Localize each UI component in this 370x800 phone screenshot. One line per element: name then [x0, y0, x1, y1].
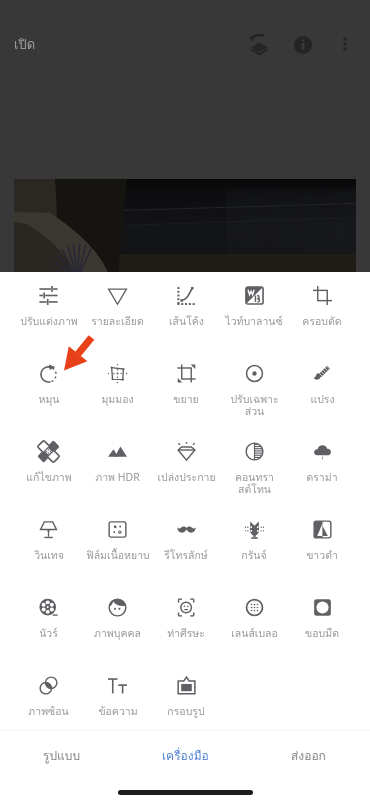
staticText: ภาพซ้อน [28, 703, 69, 720]
button[interactable]: ปรับแต่งภาพ [14, 282, 83, 360]
staticText: ท่าศีรษะ [167, 625, 205, 642]
button[interactable]: เลนส์เบลอ [220, 594, 288, 672]
staticText: เส้นโค้ง [169, 313, 204, 330]
button[interactable]: ขอบมืด [288, 594, 356, 672]
button[interactable]: ภาพ HDR [83, 438, 152, 516]
button[interactable]: กรันจ์ [220, 516, 288, 594]
staticText: ข้อความ [98, 703, 138, 720]
staticText: ครอบตัด [302, 313, 342, 330]
button[interactable]: ครอบตัด [288, 282, 356, 360]
staticText: มุมมอง [101, 391, 134, 408]
staticText: หมุน [38, 391, 60, 408]
staticText: ฟิล์มเนื้อหยาบ [86, 547, 150, 564]
button[interactable]: แก้ไขภาพ [14, 438, 83, 516]
button[interactable]: เปล่งประกาย [152, 438, 220, 516]
staticText: วินเทจ [34, 547, 64, 564]
staticText: ดราม่า [306, 469, 338, 486]
staticText: กรอบรูป [167, 703, 205, 720]
button[interactable]: เส้นโค้ง [152, 282, 220, 360]
button[interactable]: แปรง [288, 360, 356, 438]
button[interactable]: รูปแบบ [0, 731, 124, 779]
button[interactable]: มุมมอง [83, 360, 152, 438]
button[interactable]: ท่าศีรษะ [152, 594, 220, 672]
staticText: กรันจ์ [241, 547, 267, 564]
staticText: ส่งออก [291, 746, 326, 765]
button[interactable]: ไวท์บาลานซ์ [220, 282, 288, 360]
button[interactable]: ภาพซ้อน [14, 672, 83, 750]
button[interactable]: ส่งออก [247, 731, 370, 779]
staticText: แก้ไขภาพ [26, 469, 72, 486]
button[interactable]: รีโทรลักษ์ [152, 516, 220, 594]
button[interactable]: Undo history [245, 31, 272, 58]
button[interactable]: หมุน [14, 360, 83, 438]
button[interactable]: ปรับเฉพาะ ส่วน [220, 360, 288, 438]
button[interactable]: More options [332, 31, 358, 57]
staticText: รีโทรลักษ์ [164, 547, 208, 564]
staticText: ปรับเฉพาะ ส่วน [230, 391, 279, 419]
button[interactable]: เปิด [14, 34, 36, 55]
staticText: รูปแบบ [43, 746, 81, 765]
button[interactable]: Info [289, 31, 316, 58]
staticText: ภาพบุคคล [94, 625, 141, 642]
button[interactable]: นัวร์ [14, 594, 83, 672]
button[interactable]: เครื่องมือ [124, 731, 247, 779]
button[interactable]: ข้อความ [83, 672, 152, 750]
staticText: ภาพ HDR [95, 469, 140, 486]
staticText: เปิด [14, 34, 36, 55]
staticText: เครื่องมือ [162, 746, 209, 765]
staticText: คอนทรา สต์โทน [235, 469, 274, 497]
button[interactable]: ภาพบุคคล [83, 594, 152, 672]
button[interactable]: วินเทจ [14, 516, 83, 594]
button[interactable]: กรอบรูป [152, 672, 220, 750]
staticText: เลนส์เบลอ [231, 625, 278, 642]
staticText: ไวท์บาลานซ์ [225, 313, 283, 330]
staticText: ขอบมืด [305, 625, 339, 642]
staticText: รายละเอียด [91, 313, 144, 330]
staticText: ขยาย [173, 391, 199, 408]
staticText: ขาวดำ [306, 547, 338, 564]
button[interactable]: รายละเอียด [83, 282, 152, 360]
staticText: เปล่งประกาย [157, 469, 216, 486]
staticText: แปรง [310, 391, 335, 408]
staticText: ปรับแต่งภาพ [20, 313, 78, 330]
button[interactable]: ขยาย [152, 360, 220, 438]
button[interactable]: ฟิล์มเนื้อหยาบ [83, 516, 152, 594]
button[interactable]: คอนทรา สต์โทน [220, 438, 288, 516]
button[interactable]: ขาวดำ [288, 516, 356, 594]
staticText: นัวร์ [39, 625, 58, 642]
button[interactable]: ดราม่า [288, 438, 356, 516]
